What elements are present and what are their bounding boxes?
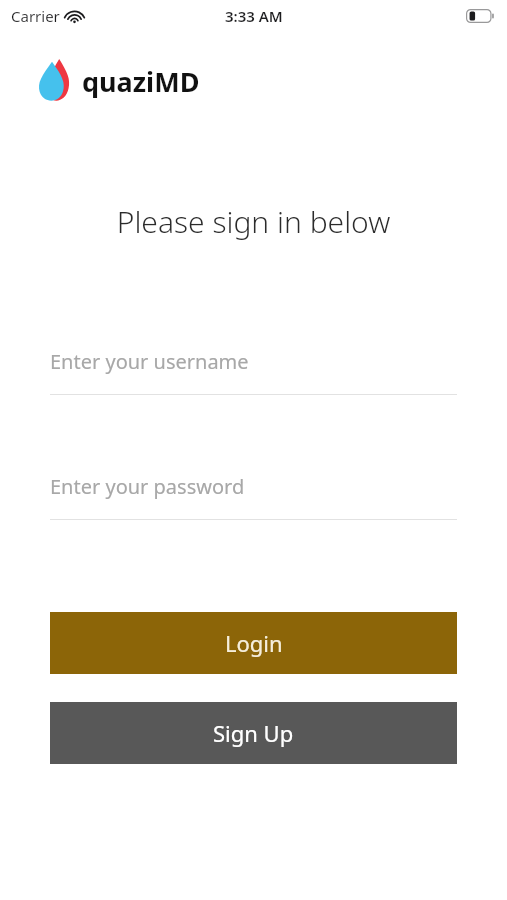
staticText: Enter your password: [50, 473, 245, 500]
staticText: 3:33 AM: [225, 6, 283, 26]
button[interactable]: Enter your username: [50, 348, 457, 395]
button[interactable]: Enter your password: [50, 473, 457, 520]
other: Battery: [466, 9, 495, 23]
staticText: Login: [225, 628, 283, 658]
staticText: Carrier: [11, 6, 60, 26]
other: quaziMD logo: [34, 58, 70, 104]
staticText: Sign Up: [213, 718, 294, 748]
staticText: Please sign in below: [0, 201, 507, 242]
other: Wi-Fi: [66, 10, 83, 23]
staticText: Enter your username: [50, 348, 249, 375]
button[interactable]: Login: [50, 612, 457, 674]
staticText: quaziMD: [82, 63, 200, 100]
button[interactable]: Sign Up: [50, 702, 457, 764]
